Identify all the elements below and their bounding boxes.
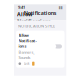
- staticText: Allow Notifications: [18, 33, 36, 48]
- staticText: NOTIFICATION STYLE: [18, 23, 55, 29]
- staticText: Banners, Sounds: [18, 50, 34, 60]
- staticText: Allow Notifications: [17, 11, 51, 25]
- staticText: Notifications: [24, 9, 57, 16]
- staticText: 9:41: [18, 5, 25, 10]
- staticText: Lock: [24, 62, 29, 65]
- staticText: ▮▮: [58, 5, 62, 9]
